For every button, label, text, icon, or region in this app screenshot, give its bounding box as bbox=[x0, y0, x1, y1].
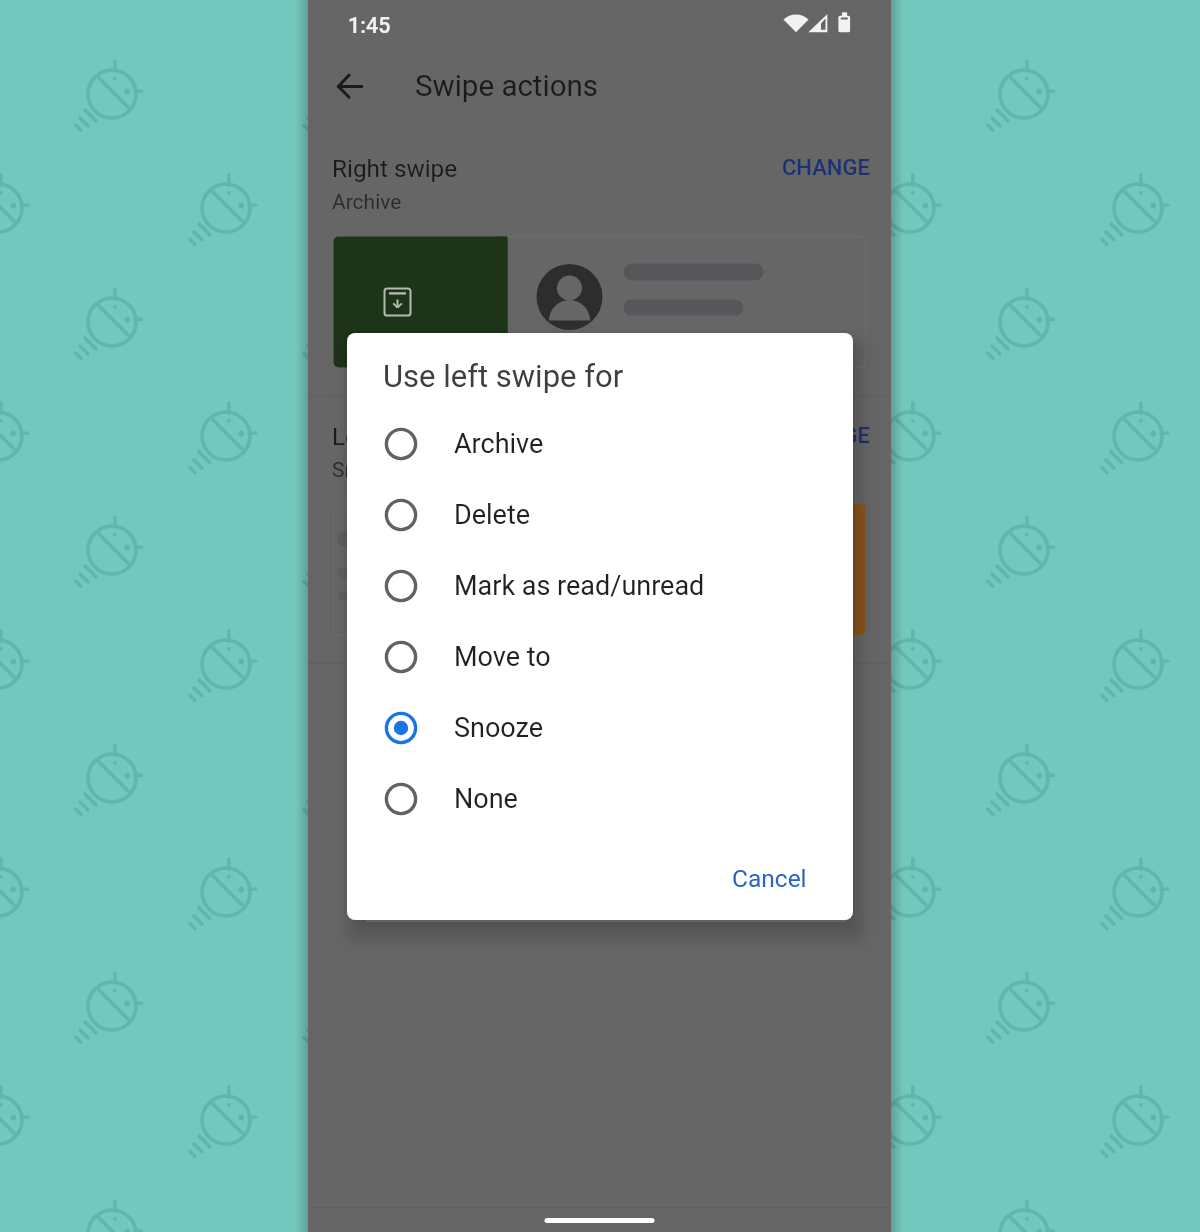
staticText: 1:45 bbox=[348, 13, 391, 38]
staticText: None bbox=[454, 783, 518, 815]
button[interactable]: CHANGE bbox=[782, 423, 870, 449]
button[interactable]: None bbox=[347, 763, 853, 834]
staticText: Snooze bbox=[454, 712, 544, 744]
button[interactable]: Archive bbox=[347, 408, 853, 479]
staticText: Delete bbox=[454, 499, 531, 531]
staticText: Snooze bbox=[332, 458, 402, 483]
staticText: Swipe actions bbox=[415, 69, 599, 104]
staticText: Left swipe bbox=[332, 422, 444, 450]
button[interactable]: Mark as read/unread bbox=[347, 550, 853, 621]
staticText: Right swipe bbox=[332, 154, 458, 182]
staticText: Use left swipe for bbox=[383, 358, 624, 394]
staticText: Mark as read/unread bbox=[454, 570, 705, 602]
staticText: Cancel bbox=[732, 864, 807, 893]
button[interactable]: Move to bbox=[347, 621, 853, 692]
staticText: Archive bbox=[454, 428, 544, 460]
button[interactable]: Cancel bbox=[714, 847, 824, 909]
button[interactable]: CHANGE bbox=[782, 155, 870, 181]
button[interactable]: Delete bbox=[347, 479, 853, 550]
staticText: Archive bbox=[332, 190, 402, 215]
button[interactable]: Snooze bbox=[347, 692, 853, 763]
staticText: Move to bbox=[454, 641, 551, 673]
